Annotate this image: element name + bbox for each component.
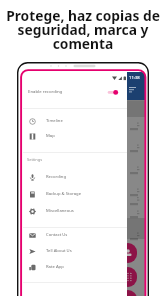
button[interactable]: New contact: [119, 243, 137, 263]
button[interactable]: New contact: [119, 290, 137, 296]
button[interactable]: Rate App: [23, 260, 127, 275]
staticText: Timeline: [46, 118, 63, 124]
button[interactable]: Backup & Storage: [23, 187, 127, 202]
staticText: Contact Us: [46, 232, 68, 238]
staticText: Settings: [27, 157, 43, 162]
button[interactable]: Recording: [23, 170, 127, 185]
staticText: Rate App: [46, 264, 64, 270]
staticText: Protege, haz copias de seguridad, marca …: [3, 6, 163, 53]
button[interactable]: Tell About Us: [23, 244, 127, 259]
button[interactable]: Map: [23, 129, 127, 144]
staticText: Enable recording: [28, 88, 63, 94]
staticText: Backup & Storage: [46, 191, 81, 197]
button[interactable]: Contact Us: [23, 228, 127, 243]
button[interactable]: Miscellaneous: [23, 204, 127, 219]
button[interactable]: Enable recording: [23, 84, 127, 102]
staticText: 11:38: [129, 75, 140, 81]
staticText: Map: [46, 133, 55, 139]
staticText: Tell About Us: [46, 248, 72, 254]
staticText: Miscellaneous: [46, 208, 74, 214]
button[interactable]: Dial pad: [119, 267, 137, 287]
button[interactable]: Timeline: [23, 114, 127, 129]
staticText: Recording: [46, 174, 66, 180]
